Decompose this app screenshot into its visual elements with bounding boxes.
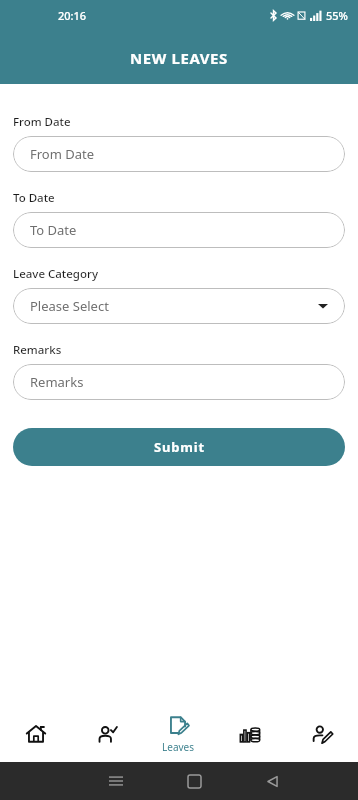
button[interactable]: Profile <box>286 723 358 745</box>
staticText: From Date <box>13 114 71 130</box>
staticText: Submit <box>154 438 205 456</box>
staticText: 55% <box>326 8 348 23</box>
button[interactable]: Back <box>233 775 311 788</box>
staticText: Please Select <box>30 297 109 315</box>
staticText: To Date <box>13 190 55 206</box>
button[interactable]: Home <box>0 723 71 745</box>
button[interactable]: Please Select <box>13 288 345 324</box>
button[interactable]: Home <box>155 775 233 788</box>
staticText: Remarks <box>30 373 84 391</box>
button[interactable]: Submit <box>13 428 345 466</box>
staticText: Remarks <box>13 342 62 358</box>
staticText: 20:16 <box>58 8 87 23</box>
button[interactable]: Attendance <box>71 723 142 745</box>
staticText: Leave Category <box>13 266 98 282</box>
button[interactable]: Recent apps <box>77 774 155 788</box>
button[interactable]: Payroll <box>214 723 286 745</box>
staticText: From Date <box>30 145 95 163</box>
button[interactable]: To Date <box>13 212 345 248</box>
staticText: Leaves <box>162 740 194 754</box>
button[interactable]: From Date <box>13 136 345 172</box>
staticText: To Date <box>30 221 77 239</box>
button[interactable]: Leaves <box>142 715 214 754</box>
button[interactable]: Remarks <box>13 364 345 400</box>
staticText: NEW LEAVES <box>130 48 228 68</box>
